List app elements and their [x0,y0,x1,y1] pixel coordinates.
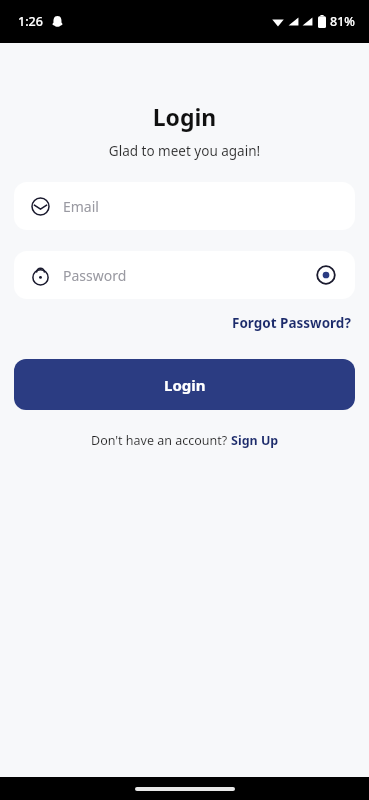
staticText: Forgot Password? [232,314,351,332]
button[interactable]: Password [14,251,355,299]
staticText: Don't have an account? [91,432,231,449]
button[interactable]: Sign Up [231,432,279,449]
staticText: Password [63,266,127,285]
button[interactable]: Email [14,182,355,230]
staticText: 1:26 [18,13,43,30]
staticText: Login [0,101,369,132]
staticText: Email [63,197,99,216]
staticText: Login [164,375,206,395]
staticText: 81% [330,13,355,30]
staticText: Glad to meet you again! [0,142,369,160]
staticText: Sign Up [231,432,279,449]
button[interactable]: Toggle password visibility [314,263,338,287]
button[interactable]: Login [14,359,355,410]
button[interactable]: Forgot Password? [228,311,355,335]
